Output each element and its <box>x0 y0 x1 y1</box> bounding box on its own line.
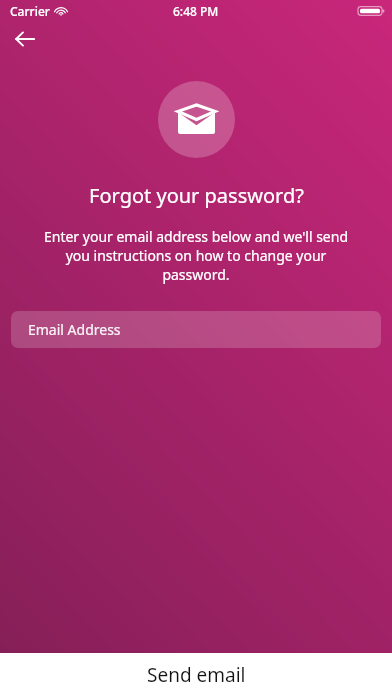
staticText: Enter your email address below and we'll… <box>34 227 358 284</box>
button[interactable]: Send email <box>0 653 392 696</box>
staticText: Carrier <box>10 3 50 19</box>
staticText: Forgot your password? <box>89 182 304 209</box>
staticText: Send email <box>147 662 246 688</box>
staticText: Email Address <box>28 320 121 339</box>
button[interactable]: Email Address <box>11 311 381 348</box>
staticText: 6:48 PM <box>173 3 219 19</box>
button[interactable]: Back <box>6 20 44 58</box>
